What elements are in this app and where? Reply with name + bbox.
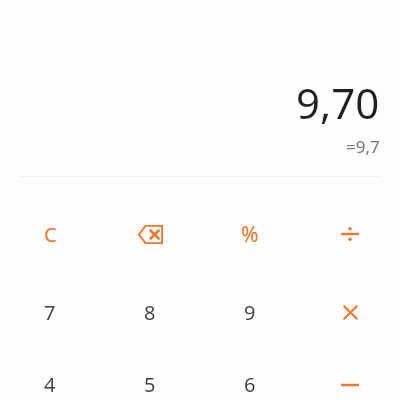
button[interactable]: Backspace <box>100 213 200 255</box>
button[interactable]: 6 <box>200 369 300 400</box>
staticText: C <box>44 221 57 248</box>
staticText: 6 <box>244 371 256 398</box>
staticText: 7 <box>44 299 56 326</box>
staticText: 9,70 <box>296 74 380 131</box>
button[interactable]: 5 <box>100 369 200 400</box>
staticText: 5 <box>144 371 156 398</box>
button[interactable]: C <box>0 213 100 255</box>
button[interactable]: 7 <box>0 291 100 333</box>
button[interactable]: 9 <box>200 291 300 333</box>
staticText: % <box>241 220 259 249</box>
staticText: 8 <box>144 299 156 326</box>
button[interactable]: % <box>200 213 300 255</box>
button[interactable]: 4 <box>0 369 100 400</box>
staticText: =9,7 <box>346 135 380 158</box>
staticText: 4 <box>44 371 56 398</box>
button[interactable]: Divide <box>300 213 400 255</box>
button[interactable]: Subtract <box>300 369 400 400</box>
button[interactable]: Multiply <box>300 291 400 333</box>
button[interactable]: 8 <box>100 291 200 333</box>
staticText: 9 <box>244 299 256 326</box>
